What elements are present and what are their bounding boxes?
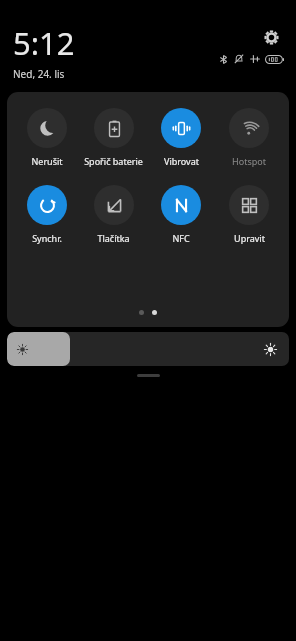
staticText: Hotspot bbox=[232, 155, 266, 167]
staticText: Vibrovat bbox=[164, 155, 199, 167]
button[interactable]: Tlačítka bbox=[80, 183, 147, 246]
button[interactable]: Upravit bbox=[215, 183, 283, 246]
staticText: Nerušit bbox=[31, 155, 63, 167]
button[interactable]: Hotspot bbox=[215, 106, 283, 169]
staticText: 5:12 bbox=[13, 22, 75, 64]
button[interactable]: Vibrovat bbox=[147, 106, 215, 169]
staticText: Tlačítka bbox=[97, 232, 130, 244]
button[interactable]: Brightness bbox=[7, 332, 289, 366]
button[interactable]: Spořič baterie bbox=[80, 106, 147, 169]
button[interactable]: Synchr. bbox=[13, 183, 80, 246]
button[interactable]: Nerušit bbox=[13, 106, 80, 169]
staticText: Spořič baterie bbox=[84, 155, 143, 167]
button[interactable]: Settings bbox=[258, 24, 284, 50]
button[interactable]: NFC bbox=[147, 183, 215, 246]
staticText: Synchr. bbox=[32, 232, 62, 244]
staticText: NFC bbox=[172, 232, 190, 244]
staticText: Upravit bbox=[234, 232, 265, 244]
staticText: Ned, 24. lis bbox=[13, 67, 65, 81]
